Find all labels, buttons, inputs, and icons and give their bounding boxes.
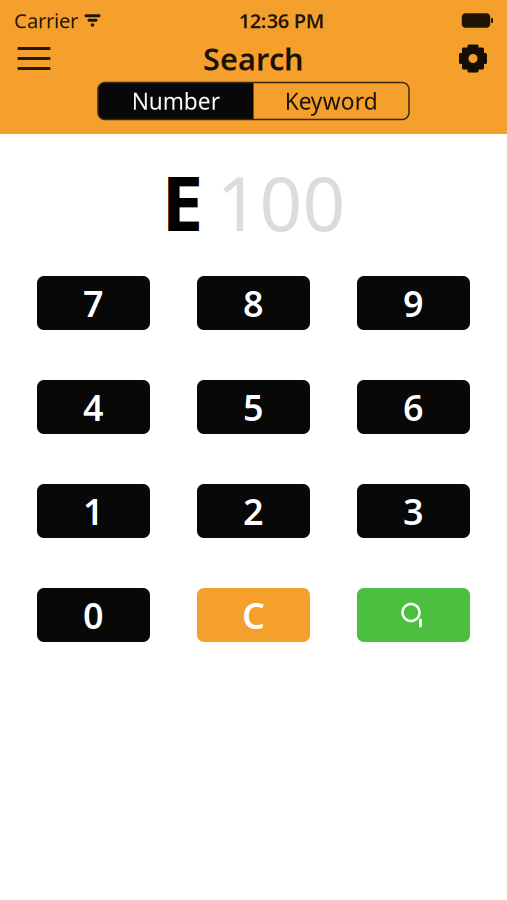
staticText: Search bbox=[203, 38, 304, 79]
button[interactable]: 0 bbox=[37, 588, 150, 642]
button[interactable]: C bbox=[197, 588, 310, 642]
button[interactable]: Settings bbox=[447, 36, 499, 80]
staticText: Keyword bbox=[285, 86, 378, 116]
button[interactable]: 2 bbox=[197, 484, 310, 538]
staticText: Number bbox=[132, 86, 220, 116]
staticText: 100 bbox=[216, 152, 345, 252]
staticText: 8 bbox=[243, 279, 264, 327]
staticText: 0 bbox=[83, 591, 104, 639]
staticText: 12:36 PM bbox=[239, 7, 325, 34]
staticText: Carrier bbox=[14, 7, 78, 34]
button[interactable]: 3 bbox=[357, 484, 470, 538]
staticText: 6 bbox=[403, 383, 424, 431]
staticText: C bbox=[242, 591, 265, 639]
button[interactable]: Menu bbox=[8, 36, 60, 80]
button[interactable]: Search bbox=[357, 588, 470, 642]
button[interactable]: 8 bbox=[197, 276, 310, 330]
button[interactable]: 9 bbox=[357, 276, 470, 330]
button[interactable]: 6 bbox=[357, 380, 470, 434]
button[interactable]: 7 bbox=[37, 276, 150, 330]
button[interactable]: 5 bbox=[197, 380, 310, 434]
button[interactable]: Keyword bbox=[253, 82, 409, 119]
staticText: 7 bbox=[83, 279, 104, 327]
staticText: 4 bbox=[83, 383, 104, 431]
staticText: 9 bbox=[403, 279, 424, 327]
button[interactable]: 1 bbox=[37, 484, 150, 538]
staticText: 3 bbox=[403, 487, 424, 535]
button[interactable]: 4 bbox=[37, 380, 150, 434]
staticText: 2 bbox=[243, 487, 264, 535]
staticText: E bbox=[161, 152, 203, 252]
button[interactable]: Number bbox=[98, 82, 253, 119]
staticText: 5 bbox=[243, 383, 264, 431]
staticText: 1 bbox=[83, 487, 104, 535]
